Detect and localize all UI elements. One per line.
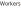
staticText: Workers xyxy=(0,0,21,7)
